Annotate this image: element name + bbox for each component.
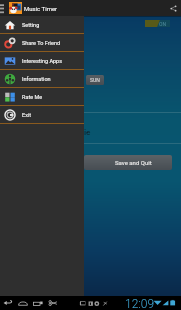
- staticText: Save and Quit: [115, 159, 152, 166]
- button[interactable]: Open navigation drawer: [0, 0, 7, 16]
- button[interactable]: Home: [15, 296, 30, 310]
- button[interactable]: Enable timer: [145, 20, 170, 27]
- staticText: Music Timer: [24, 5, 58, 12]
- staticText: Rate Me: [22, 94, 43, 100]
- staticText: Information: [22, 76, 51, 82]
- staticText: Setting: [22, 22, 40, 28]
- button[interactable]: Screenshot: [46, 296, 61, 310]
- button[interactable]: Save and Quit: [84, 155, 172, 170]
- staticText: Share To Friend: [22, 40, 61, 46]
- button[interactable]: Menu: [76, 296, 88, 310]
- button[interactable]: Share: [165, 0, 181, 16]
- staticText: Interesting Apps: [22, 58, 63, 64]
- staticText: SUN: [90, 77, 100, 83]
- staticText: Exit: [22, 112, 31, 118]
- button[interactable]: Back: [0, 296, 15, 310]
- button[interactable]: Rate Me: [0, 88, 84, 105]
- button[interactable]: Share To Friend: [0, 34, 84, 51]
- button[interactable]: Recent apps: [30, 296, 45, 310]
- button[interactable]: Information: [0, 70, 84, 87]
- button[interactable]: SUN: [86, 75, 104, 85]
- staticText: 12:09: [125, 297, 155, 310]
- button[interactable]: Exit: [0, 106, 84, 123]
- staticText: ON: [159, 21, 167, 27]
- staticText: ie: [84, 128, 91, 137]
- button[interactable]: Interesting Apps: [0, 52, 84, 69]
- button[interactable]: Setting: [0, 16, 84, 33]
